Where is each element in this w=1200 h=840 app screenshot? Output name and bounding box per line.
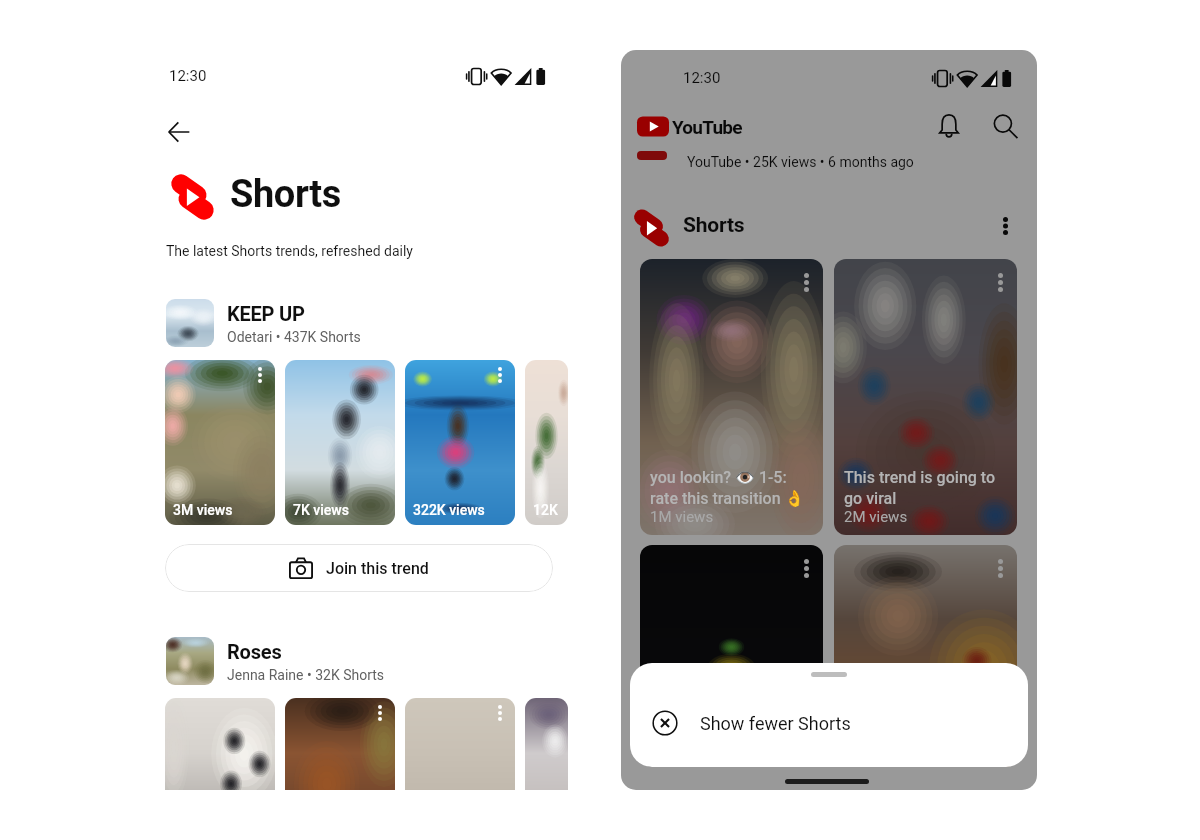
button[interactable]: Join this trend: [165, 544, 553, 592]
button[interactable]: More options: [793, 555, 819, 581]
button[interactable]: Short video: [165, 698, 275, 790]
button[interactable]: Short video: [285, 698, 395, 790]
button[interactable]: More options: [248, 363, 272, 387]
button[interactable]: Short video: [525, 698, 568, 790]
staticText: 3M views: [173, 502, 233, 518]
button[interactable]: More options: [793, 269, 819, 295]
staticText: Show fewer Shorts: [700, 713, 851, 734]
staticText: 1M views: [650, 508, 714, 526]
staticText: YouTube: [672, 116, 742, 138]
button[interactable]: More options: [488, 363, 512, 387]
staticText: 7K views: [293, 502, 349, 518]
button[interactable]: More options: [989, 210, 1021, 242]
staticText: 12:30: [683, 69, 721, 87]
staticText: Join this trend: [326, 559, 429, 578]
button[interactable]: Show fewer Shorts: [652, 695, 1028, 751]
staticText: you lookin? 👁 1-5: rate this transition …: [650, 468, 805, 508]
button[interactable]: More options: [987, 269, 1013, 295]
staticText: This trend is going to go viral: [844, 468, 996, 508]
button[interactable]: Roses: [166, 637, 385, 685]
staticText: Odetari • 437K Shorts: [227, 329, 361, 345]
staticText: Shorts: [230, 172, 341, 217]
staticText: Roses: [227, 640, 282, 663]
button[interactable]: More options: [987, 555, 1013, 581]
button[interactable]: Short video: [405, 698, 515, 790]
staticText: YouTube • 25K views • 6 months ago: [687, 154, 914, 170]
button[interactable]: Short, 12K views: [525, 360, 568, 525]
button[interactable]: Search: [987, 108, 1023, 144]
button[interactable]: Short, 1M views: [640, 259, 823, 535]
button[interactable]: Short, 3M views: [165, 360, 275, 525]
button[interactable]: More options: [368, 701, 392, 725]
button[interactable]: Short video: [834, 545, 1017, 767]
staticText: The latest Shorts trends, refreshed dail…: [166, 243, 413, 259]
button[interactable]: Short, 2M views: [834, 259, 1017, 535]
staticText: 322K views: [413, 502, 485, 518]
button[interactable]: More options: [488, 701, 512, 725]
button[interactable]: Notifications: [931, 108, 967, 144]
staticText: 12K views: [533, 502, 568, 518]
button[interactable]: KEEP UP: [166, 299, 361, 347]
staticText: KEEP UP: [227, 302, 305, 325]
staticText: Jenna Raine • 32K Shorts: [227, 667, 385, 683]
button[interactable]: Short, 322K views: [405, 360, 515, 525]
staticText: 2M views: [844, 508, 908, 526]
button[interactable]: Back: [157, 110, 201, 154]
staticText: Shorts: [683, 213, 745, 238]
button[interactable]: Short video: [640, 545, 823, 767]
staticText: 12:30: [169, 67, 207, 85]
button[interactable]: Short, 7K views: [285, 360, 395, 525]
